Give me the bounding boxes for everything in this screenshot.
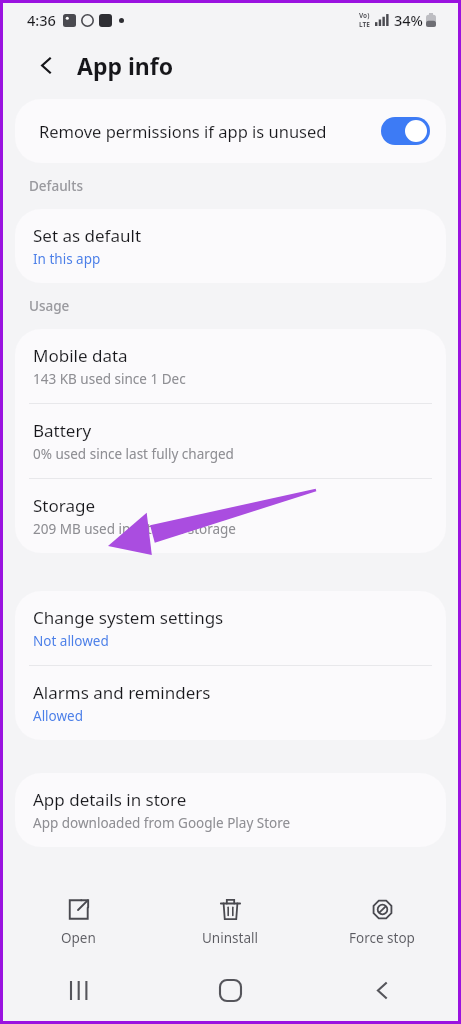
staticText: Uninstall [202, 929, 258, 947]
button[interactable]: Uninstall [154, 885, 306, 959]
button[interactable]: Back [29, 48, 63, 82]
staticText: Storage [33, 494, 96, 517]
button[interactable]: Remove permissions toggle [381, 117, 430, 145]
staticText: 143 KB used since 1 Dec [33, 370, 186, 388]
button[interactable]: Force stop [306, 885, 458, 959]
button[interactable]: Remove permissions if app is unused [15, 99, 446, 163]
staticText: Open [61, 929, 96, 947]
staticText: In this app [33, 250, 101, 268]
button[interactable]: Battery [15, 404, 446, 478]
button[interactable]: Recent apps [3, 959, 154, 1021]
staticText: LTE [359, 20, 370, 29]
button[interactable]: Set as default [15, 209, 446, 283]
button[interactable]: Change system settings [15, 591, 446, 665]
button[interactable]: Home [154, 959, 306, 1021]
staticText: Defaults [29, 177, 83, 195]
button[interactable]: App details in store [15, 773, 446, 847]
button[interactable]: Back [306, 959, 458, 1021]
staticText: Set as default [33, 224, 142, 247]
staticText: 4:36 [27, 10, 56, 30]
staticText: Usage [29, 297, 70, 315]
staticText: 34% [394, 10, 423, 30]
staticText: Remove permissions if app is unused [39, 120, 381, 142]
button[interactable]: Storage [15, 479, 446, 553]
button[interactable]: Mobile data [15, 329, 446, 403]
button[interactable]: Open [3, 885, 154, 959]
button[interactable]: Alarms and reminders [15, 666, 446, 740]
staticText: App downloaded from Google Play Store [33, 814, 291, 832]
staticText: Alarms and reminders [33, 681, 211, 704]
staticText: Change system settings [33, 606, 224, 629]
staticText: Not allowed [33, 632, 109, 650]
staticText: 0% used since last fully charged [33, 445, 234, 463]
staticText: Allowed [33, 707, 84, 725]
staticText: 209 MB used in Internal storage [33, 520, 236, 538]
staticText: App details in store [33, 788, 187, 811]
staticText: Mobile data [33, 344, 128, 367]
staticText: Battery [33, 419, 92, 442]
staticText: Force stop [349, 929, 415, 947]
staticText: App info [77, 50, 174, 81]
staticText: Vo) [359, 11, 370, 20]
